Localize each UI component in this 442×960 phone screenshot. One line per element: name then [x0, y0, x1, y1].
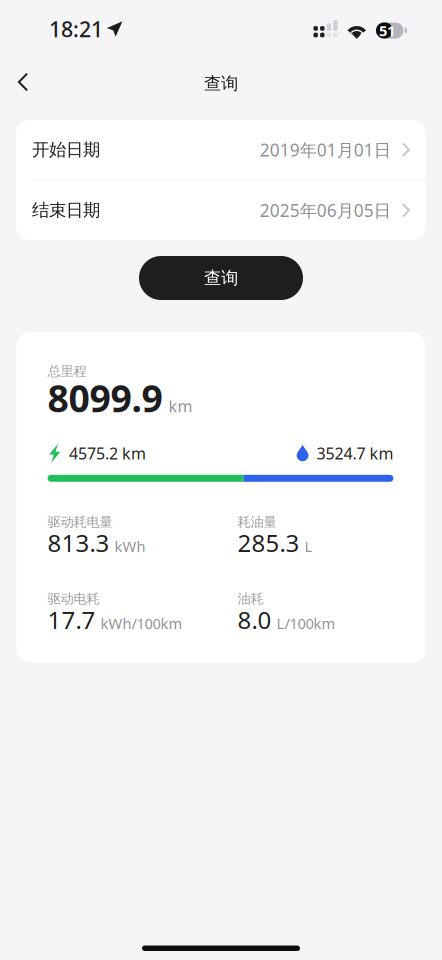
staticText: 2025年06月05日: [260, 199, 391, 222]
staticText: 总里程: [47, 363, 86, 379]
staticText: 结束日期: [32, 200, 100, 221]
staticText: 3524.7 km: [316, 443, 393, 464]
staticText: 8.0: [237, 604, 271, 636]
staticText: 813.3: [47, 527, 109, 559]
staticText: 耗油量: [237, 514, 276, 530]
staticText: 8099.9: [47, 373, 162, 423]
staticText: L/100km: [276, 613, 335, 633]
staticText: 驱动耗电量: [47, 514, 112, 530]
staticText: 2019年01月01日: [260, 138, 391, 161]
button[interactable]: 结束日期: [16, 180, 426, 240]
staticText: 查询: [204, 73, 238, 94]
staticText: 285.3: [237, 527, 299, 559]
staticText: 51: [379, 21, 395, 40]
staticText: 驱动电耗: [47, 591, 99, 607]
staticText: km: [168, 395, 192, 417]
staticText: kWh/100km: [100, 613, 182, 633]
staticText: 4575.2 km: [69, 443, 146, 464]
staticText: kWh: [114, 537, 145, 556]
button[interactable]: Back: [1, 60, 45, 104]
staticText: L: [304, 537, 312, 556]
staticText: 开始日期: [32, 139, 100, 160]
staticText: 油耗: [237, 591, 263, 607]
staticText: 18:21: [49, 15, 103, 43]
button[interactable]: 查询: [139, 256, 303, 300]
staticText: 查询: [204, 267, 238, 289]
staticText: 17.7: [47, 604, 95, 636]
button[interactable]: 开始日期: [16, 120, 426, 179]
